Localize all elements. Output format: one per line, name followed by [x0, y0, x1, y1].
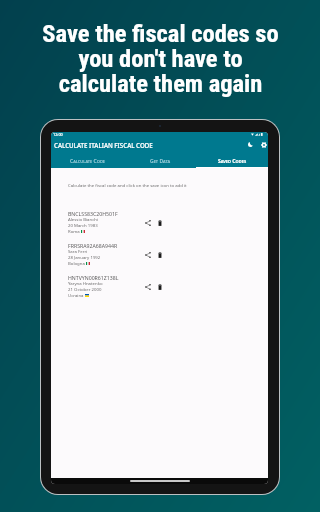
button[interactable]: Delete [154, 217, 165, 228]
staticText: Roma [68, 228, 80, 234]
staticText: Ucraina [68, 292, 84, 298]
button[interactable]: SAVED CODES [196, 132, 268, 168]
staticText: 12:00 [53, 132, 63, 137]
button[interactable]: Settings [258, 139, 268, 150]
staticText: Calculate the fiscal code and click on t… [68, 182, 187, 188]
button[interactable]: BNCLSS83C20H501F [51, 206, 268, 238]
staticText: CALCULATE CODE [51, 158, 124, 165]
staticText: Save the fiscal codes so you don't have … [42, 19, 279, 98]
staticText: Alessio Bianchi [68, 216, 99, 222]
button[interactable]: Share [142, 217, 153, 228]
staticText: CALCULATE ITALIAN FISCAL CODE [54, 141, 153, 149]
staticText: SAVED CODES [196, 158, 268, 165]
button[interactable]: FRRSRA92A68A944R [51, 238, 268, 270]
staticText: FRRSRA92A68A944R [68, 242, 118, 249]
staticText: 20 March 1983 [68, 222, 98, 228]
staticText: Sara Ferri [68, 248, 88, 254]
staticText: 21 October 2000 [68, 286, 102, 292]
button[interactable]: HNTVYN00R61Z138L [51, 270, 268, 302]
staticText: HNTVYN00R61Z138L [68, 274, 119, 281]
button[interactable]: Share [142, 281, 153, 292]
button[interactable]: Toggle dark mode [245, 139, 256, 150]
button[interactable]: CALCULATE CODE [51, 132, 124, 168]
button[interactable]: Delete [154, 249, 165, 260]
staticText: Bologna [68, 260, 85, 266]
button[interactable]: Delete [154, 281, 165, 292]
button[interactable]: Share [142, 249, 153, 260]
staticText: 28 January 1992 [68, 254, 101, 260]
staticText: GET DATA [124, 158, 196, 165]
button[interactable]: GET DATA [124, 132, 196, 168]
staticText: Yaryna Hnatenko [68, 280, 103, 286]
staticText: BNCLSS83C20H501F [68, 210, 118, 217]
